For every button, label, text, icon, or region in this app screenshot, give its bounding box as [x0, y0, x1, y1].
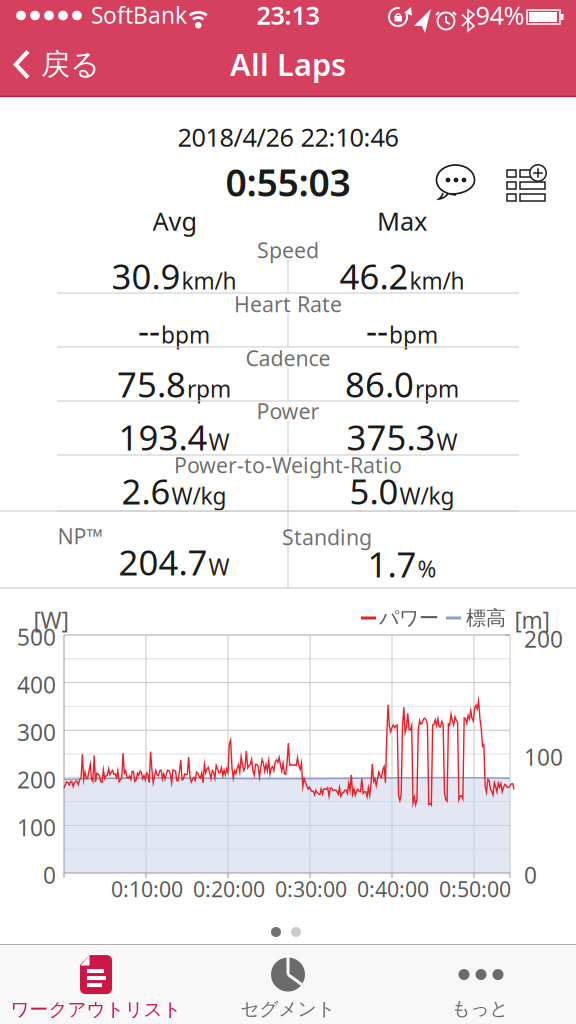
staticText: NP™: [57, 522, 102, 550]
staticText: 0:55:03: [225, 157, 350, 207]
staticText: W/kg: [399, 481, 454, 511]
staticText: ワークアウトリスト: [10, 998, 181, 1021]
staticText: Cadence: [245, 344, 330, 372]
staticText: km/h: [409, 266, 464, 296]
staticText: W: [208, 427, 229, 457]
staticText: Power: [256, 397, 319, 425]
staticText: 標高: [466, 606, 506, 630]
button[interactable]: セグメント: [192, 944, 384, 1022]
staticText: --: [366, 307, 388, 353]
staticText: bpm: [161, 320, 210, 350]
staticText: 0:40:00: [357, 875, 429, 903]
staticText: 46.2: [339, 253, 408, 299]
staticText: W/kg: [171, 481, 226, 511]
staticText: 0: [524, 860, 537, 890]
staticText: W: [208, 552, 229, 582]
staticText: [W]: [33, 605, 68, 635]
button[interactable]: Comments: [436, 164, 476, 200]
staticText: Max: [377, 204, 427, 238]
staticText: 86.0: [345, 361, 414, 407]
staticText: パワー: [379, 606, 439, 630]
staticText: W: [436, 427, 457, 457]
staticText: [m]: [514, 605, 549, 635]
staticText: 2018/4/26 22:10:46: [177, 120, 398, 154]
staticText: rpm: [415, 374, 459, 404]
staticText: Speed: [257, 236, 319, 264]
staticText: 0:30:00: [275, 875, 347, 903]
staticText: 204.7: [118, 539, 207, 585]
staticText: 375.3: [346, 414, 435, 460]
staticText: 戻る: [41, 46, 100, 82]
staticText: 200: [524, 624, 563, 654]
staticText: 0: [43, 860, 56, 890]
button[interactable]: Back: [0, 33, 100, 96]
staticText: 0:20:00: [193, 875, 265, 903]
staticText: Avg: [152, 204, 197, 238]
staticText: Standing: [282, 523, 372, 551]
staticText: 2.6: [121, 468, 170, 514]
staticText: 75.8: [117, 361, 186, 407]
button[interactable]: もっと: [384, 944, 576, 1022]
staticText: 400: [17, 669, 56, 700]
staticText: 94%: [475, 0, 524, 32]
staticText: Heart Rate: [234, 290, 342, 318]
staticText: 30.9: [111, 253, 180, 299]
button[interactable]: ワークアウトリスト: [0, 944, 192, 1022]
staticText: 1.7: [367, 541, 416, 587]
staticText: 0:10:00: [111, 875, 183, 903]
staticText: km/h: [181, 266, 236, 296]
staticText: 193.4: [118, 414, 207, 460]
staticText: セグメント: [240, 997, 335, 1020]
staticText: 100: [17, 812, 56, 842]
staticText: 100: [524, 742, 563, 772]
staticText: --: [138, 307, 160, 353]
staticText: 200: [17, 765, 56, 795]
staticText: 500: [17, 622, 56, 652]
staticText: もっと: [451, 997, 508, 1020]
staticText: 5.0: [349, 468, 398, 514]
staticText: All Laps: [230, 44, 346, 84]
staticText: SoftBank: [91, 0, 187, 30]
button[interactable]: Add to list: [507, 166, 547, 202]
staticText: 23:13: [256, 0, 319, 32]
staticText: 0:50:00: [439, 875, 511, 903]
staticText: Power-to-Weight-Ratio: [174, 451, 402, 479]
staticText: 300: [17, 717, 56, 747]
staticText: rpm: [187, 374, 231, 404]
staticText: bpm: [389, 320, 438, 350]
staticText: %: [417, 554, 436, 584]
